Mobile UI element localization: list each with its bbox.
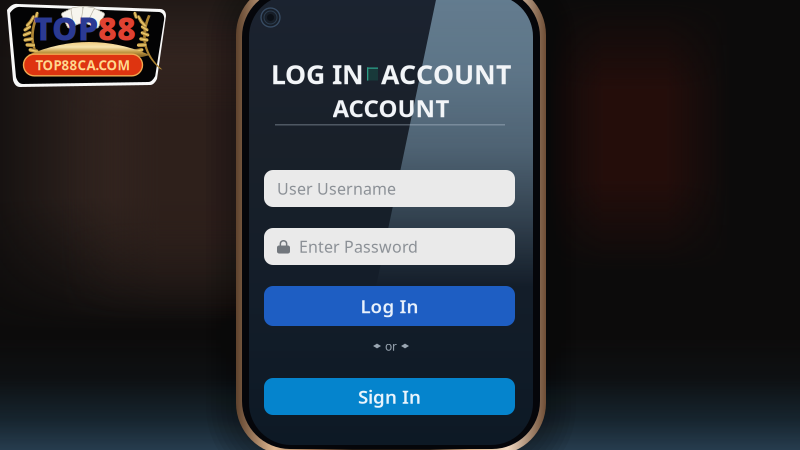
button[interactable]: User Username — [264, 170, 515, 207]
staticText: User Username — [277, 178, 396, 199]
staticText: ACCOUNT — [332, 92, 449, 124]
button[interactable]: Log In — [264, 286, 515, 326]
staticText: Log In — [360, 294, 418, 318]
staticText: Sign In — [358, 384, 421, 409]
staticText: TOP88CA.COM — [35, 56, 130, 74]
button[interactable]: Sign In — [264, 378, 515, 415]
staticText: LOG IN — [271, 56, 364, 92]
staticText: Enter Password — [299, 236, 418, 257]
staticText: or — [385, 338, 397, 354]
button[interactable]: TOP88CA.COM — [2, 1, 174, 93]
staticText: 88 — [98, 7, 136, 49]
button[interactable]: Enter Password — [264, 228, 515, 265]
staticText: ACCOUNT — [381, 56, 511, 92]
staticText: TOP — [34, 7, 98, 49]
